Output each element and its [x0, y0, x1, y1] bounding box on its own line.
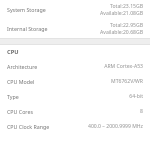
staticText: 400.0 – 2000.9999 MHz — [87, 123, 143, 130]
staticText: 8 — [140, 108, 143, 115]
staticText: CPU Model — [7, 78, 111, 85]
staticText: Available:20.68GB — [100, 29, 143, 36]
staticText: ARM Cortex-A53 — [104, 63, 143, 70]
staticText: Type — [7, 93, 129, 100]
button[interactable]: CPU Cores — [0, 104, 150, 119]
button[interactable]: CPU Model — [0, 74, 150, 89]
staticText: CPU Cores — [7, 108, 140, 115]
button[interactable]: Type — [0, 89, 150, 104]
staticText: 64-bit — [129, 93, 143, 100]
button[interactable]: CPU Clock Range — [0, 119, 150, 134]
staticText: MT6762V/WR — [111, 78, 143, 85]
staticText: System Storage — [7, 6, 100, 13]
staticText: CPU Clock Range — [7, 123, 87, 130]
staticText: CPU — [7, 48, 19, 56]
button[interactable]: System Storage — [0, 0, 150, 19]
staticText: Total:22.95GB — [110, 22, 143, 29]
staticText: Total:23.15GB — [110, 3, 143, 10]
staticText: Architecture — [7, 63, 104, 70]
staticText: Internal Storage — [7, 25, 100, 32]
staticText: Available:21.08GB — [100, 10, 143, 17]
button[interactable]: Internal Storage — [0, 19, 150, 38]
button[interactable]: Architecture — [0, 59, 150, 74]
